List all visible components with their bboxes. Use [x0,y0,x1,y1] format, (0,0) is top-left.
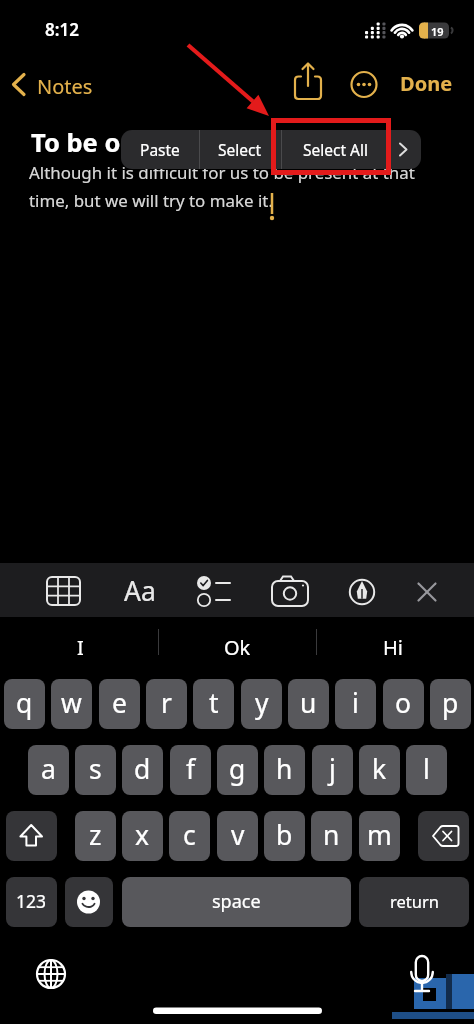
staticText: Aa [124,573,156,609]
button[interactable]: c [169,811,210,861]
staticText: f [186,751,196,787]
button[interactable]: Done [400,70,458,98]
button[interactable]: return [359,877,469,927]
button[interactable] [405,570,449,610]
button[interactable]: Hi [343,627,443,667]
staticText: space [212,889,261,914]
button[interactable]: w [51,679,92,729]
button[interactable] [349,69,379,99]
button[interactable]: x [122,811,163,861]
button[interactable]: s [75,745,116,795]
button[interactable]: Ok [187,627,287,667]
staticText: h [276,751,293,787]
staticText: Ok [224,634,251,661]
button[interactable]: u [288,679,329,729]
button[interactable]: i [335,679,376,729]
button[interactable] [117,570,161,610]
button[interactable]: j [312,745,353,795]
staticText: u [300,685,317,721]
staticText: 123 [16,889,47,913]
button[interactable]: f [170,745,211,795]
button[interactable]: h [264,745,305,795]
staticText: k [372,751,387,787]
button[interactable] [65,877,113,927]
button[interactable]: 123 [6,877,57,927]
button[interactable]: b [264,811,305,861]
button[interactable] [27,950,75,998]
staticText: Paste [140,139,180,160]
button[interactable] [389,130,421,169]
staticText: Hi [383,634,403,661]
button[interactable] [292,62,324,102]
staticText: o [395,685,412,721]
staticText: time, but we will try to make it. [29,189,273,212]
staticText: p [442,685,459,721]
staticText: return [390,890,439,912]
button[interactable]: n [311,811,352,861]
staticText: x [135,817,150,853]
staticText: q [16,685,33,721]
button[interactable]: Select All [281,130,389,169]
staticText: I [77,634,84,661]
staticText: t [209,685,219,721]
button[interactable]: g [217,745,258,795]
button[interactable] [418,811,469,861]
button[interactable]: p [430,679,471,729]
staticText: 19 [431,24,444,39]
staticText: 8:12 [45,18,79,41]
button[interactable] [191,570,235,610]
staticText: e [112,685,127,721]
button[interactable]: l [406,745,447,795]
button[interactable] [340,570,384,610]
staticText: n [323,817,340,853]
button[interactable]: r [146,679,187,729]
staticText: m [367,817,392,853]
staticText: g [229,751,246,787]
button[interactable]: t [193,679,234,729]
staticText: l [423,751,430,787]
button[interactable]: z [75,811,116,861]
button[interactable]: o [383,679,424,729]
staticText: i [352,685,359,721]
button[interactable]: space [122,877,351,927]
staticText: b [276,817,293,853]
button[interactable] [266,570,310,610]
button[interactable]: d [122,745,163,795]
button[interactable]: e [99,679,140,729]
staticText: r [161,685,172,721]
button[interactable]: Select [199,130,281,169]
staticText: z [89,817,102,853]
staticText: Select All [303,139,368,160]
button[interactable]: y [241,679,282,729]
button[interactable] [8,68,103,100]
staticText: a [41,751,56,787]
staticText: To be o [31,125,121,160]
staticText: w [61,685,82,721]
staticText: Although it is difficult for us to be pr… [29,161,415,184]
button[interactable]: v [217,811,258,861]
staticText: Select [218,139,262,160]
button[interactable]: Paste [121,130,199,169]
button[interactable]: q [4,679,45,729]
button[interactable]: m [359,811,400,861]
button[interactable] [398,948,446,996]
staticText: j [329,751,336,787]
button[interactable]: k [359,745,400,795]
button[interactable]: I [30,627,130,667]
staticText: v [231,817,245,853]
staticText: Done [400,70,453,97]
staticText: d [134,751,151,787]
button[interactable] [6,811,57,861]
button[interactable]: a [28,745,69,795]
staticText: c [183,817,196,853]
button[interactable] [41,570,85,610]
staticText: y [255,685,269,721]
staticText: Notes [37,73,93,100]
staticText: s [89,751,102,787]
